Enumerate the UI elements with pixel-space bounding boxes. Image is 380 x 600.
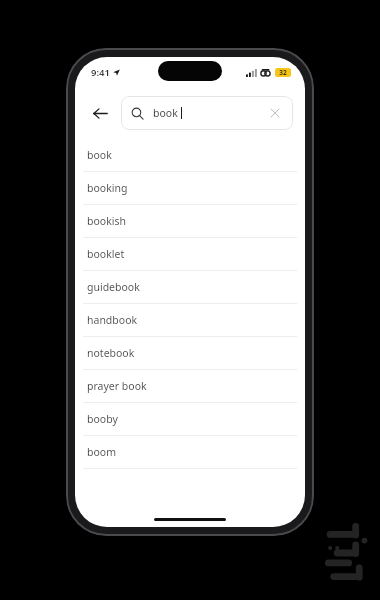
- button[interactable]: booking: [75, 172, 305, 204]
- button[interactable]: book: [75, 139, 305, 171]
- staticText: 32: [279, 68, 287, 77]
- staticText: notebook: [87, 346, 135, 360]
- button[interactable]: prayer book: [75, 370, 305, 402]
- button[interactable]: notebook: [75, 337, 305, 369]
- button[interactable]: book: [121, 96, 293, 130]
- button[interactable]: booby: [75, 403, 305, 435]
- button[interactable]: Back: [85, 98, 115, 128]
- button[interactable]: handbook: [75, 304, 305, 336]
- staticText: guidebook: [87, 280, 140, 294]
- staticText: book: [87, 148, 112, 162]
- staticText: booby: [87, 412, 118, 426]
- staticText: bookish: [87, 214, 126, 228]
- staticText: book: [153, 106, 178, 120]
- button[interactable]: boom: [75, 436, 305, 468]
- staticText: boom: [87, 445, 116, 459]
- button[interactable]: Clear search: [267, 105, 283, 121]
- button[interactable]: guidebook: [75, 271, 305, 303]
- button[interactable]: bookish: [75, 205, 305, 237]
- staticText: booking: [87, 181, 128, 195]
- staticText: booklet: [87, 247, 125, 261]
- staticText: prayer book: [87, 379, 147, 393]
- button[interactable]: booklet: [75, 238, 305, 270]
- staticText: handbook: [87, 313, 138, 327]
- staticText: 9:41: [91, 66, 110, 79]
